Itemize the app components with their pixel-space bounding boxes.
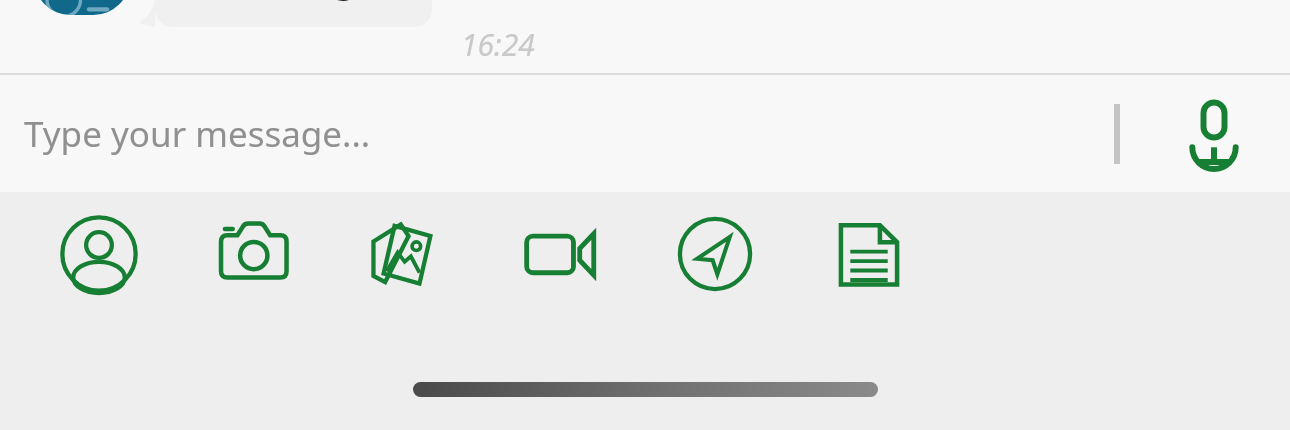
button[interactable]: Contact avatar bbox=[34, 0, 130, 15]
button[interactable]: Voice message bbox=[1172, 92, 1256, 176]
button[interactable]: Video bbox=[520, 213, 602, 295]
staticText: 16:24 bbox=[461, 24, 535, 65]
button[interactable]: Camera bbox=[212, 213, 294, 295]
button[interactable]: Gallery bbox=[366, 213, 448, 295]
button[interactable]: Document bbox=[828, 213, 910, 295]
staticText: Greetings! bbox=[204, 0, 384, 2]
staticText: Type your message... bbox=[24, 110, 371, 158]
button[interactable]: Type your message... bbox=[0, 75, 1114, 192]
button[interactable]: Contact bbox=[58, 213, 140, 295]
button[interactable]: Location bbox=[674, 213, 756, 295]
